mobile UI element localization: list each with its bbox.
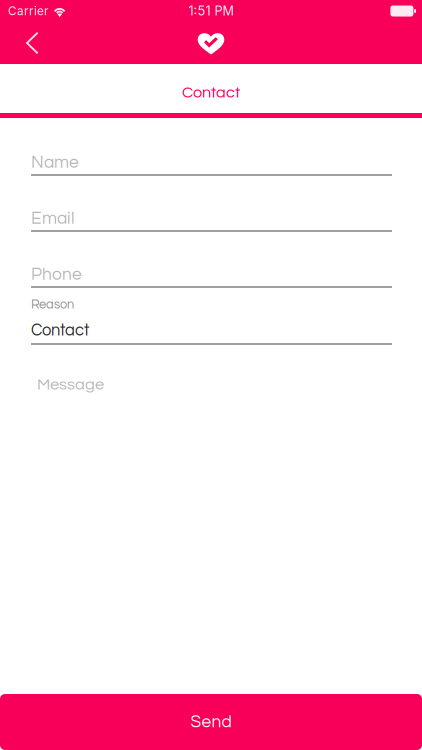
staticText: Name <box>31 154 79 171</box>
staticText: Message <box>37 376 104 393</box>
staticText: Reason <box>31 298 74 311</box>
staticText: Phone <box>31 266 82 283</box>
button[interactable]: Contact <box>0 64 422 113</box>
staticText: Send <box>190 713 231 731</box>
button[interactable]: Back <box>0 23 56 63</box>
staticText: Email <box>31 210 75 227</box>
staticText: Contact <box>31 322 89 339</box>
staticText: 1:51 PM <box>188 3 233 19</box>
staticText: Carrier <box>8 4 48 18</box>
staticText: Contact <box>182 84 240 101</box>
button[interactable]: Favourites <box>189 23 232 62</box>
button[interactable]: Send <box>0 694 422 750</box>
